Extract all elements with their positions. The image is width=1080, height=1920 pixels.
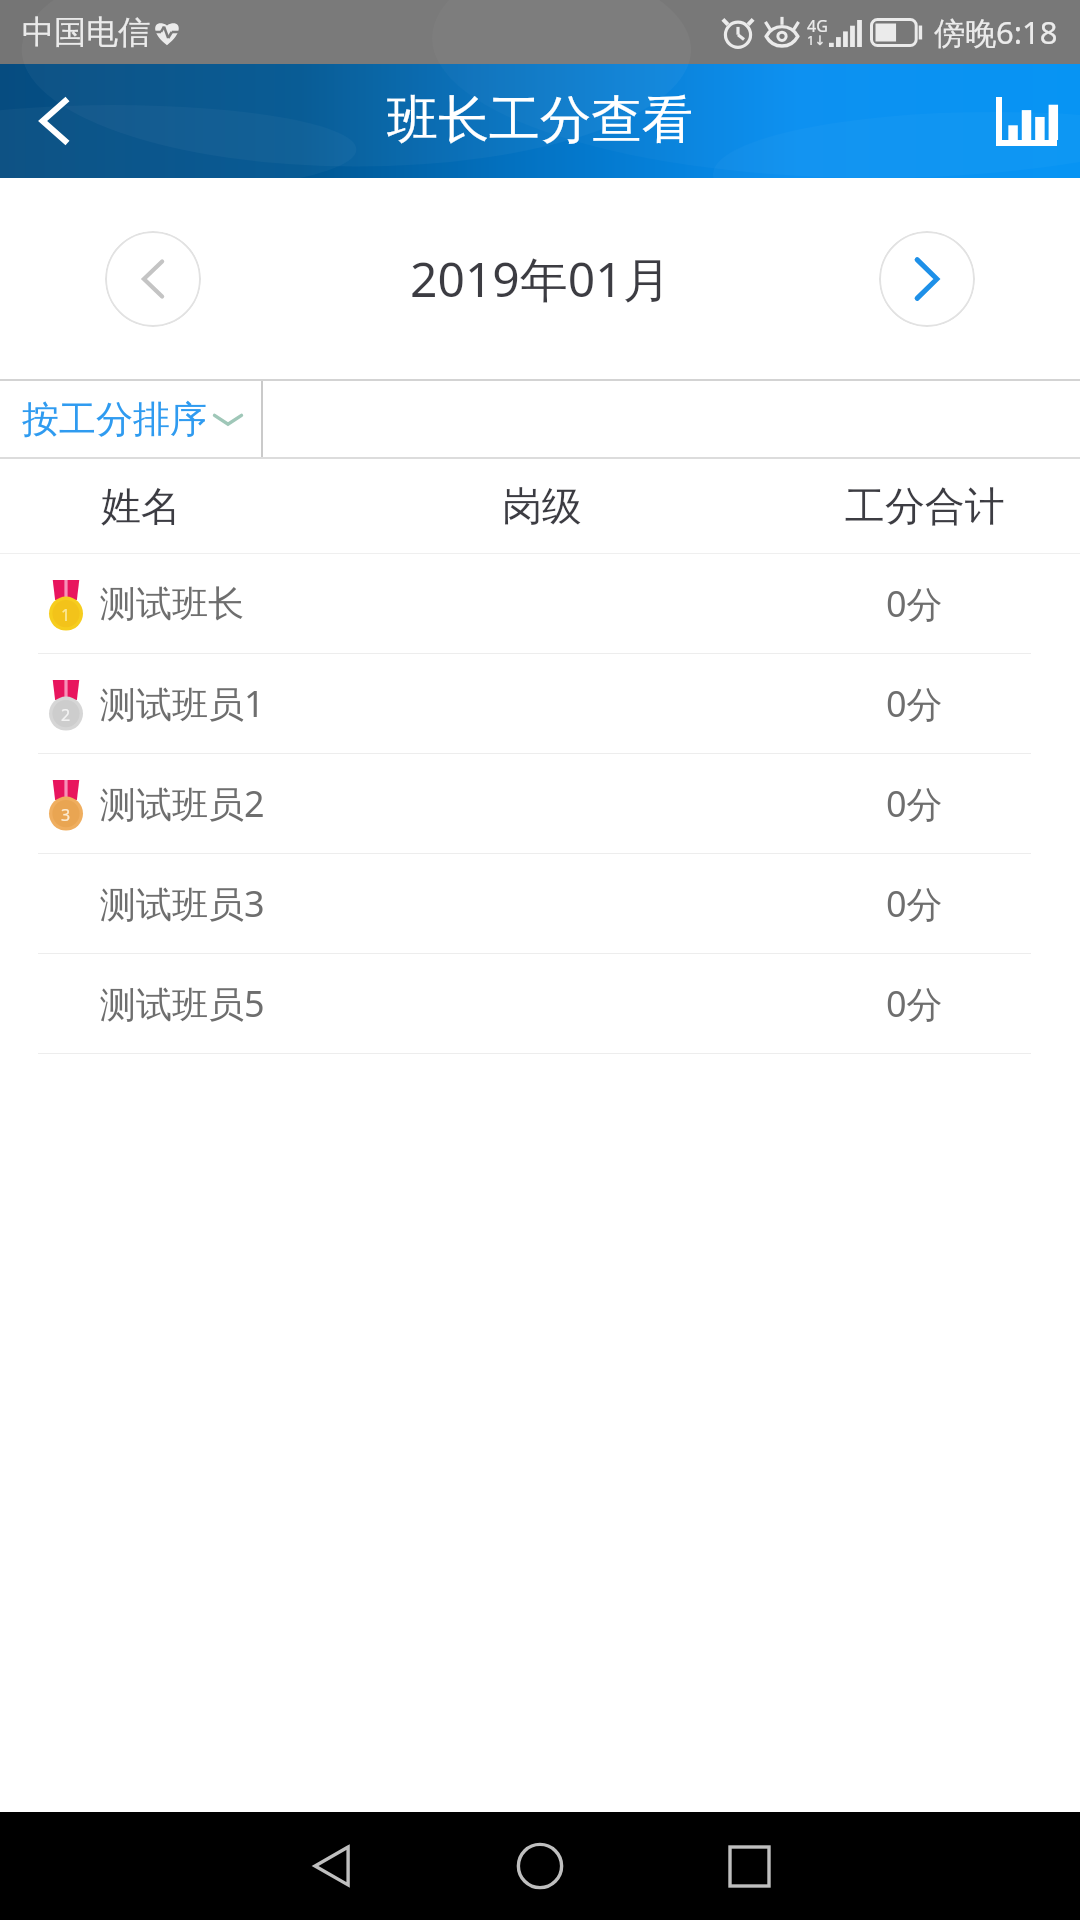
staticText: 0分 (886, 779, 943, 828)
button[interactable]: 2 (0, 654, 1080, 753)
staticText: 2 (61, 704, 71, 726)
staticText: 0分 (886, 979, 943, 1028)
staticText: 1 (61, 604, 71, 626)
button[interactable]: Home (492, 1818, 588, 1914)
staticText: 测试班长 (100, 581, 244, 626)
staticText: 1↓ (807, 31, 826, 49)
staticText: 0分 (886, 679, 943, 728)
staticText: 测试班员1 (100, 679, 265, 728)
staticText: 4G (807, 15, 828, 37)
staticText: 姓名 (101, 481, 181, 531)
button[interactable]: 按工分排序 (0, 381, 261, 457)
button[interactable]: Back (0, 67, 108, 175)
staticText: 中国电信 (22, 12, 150, 52)
button[interactable]: Statistics (972, 67, 1080, 175)
staticText: 按工分排序 (22, 396, 207, 443)
button[interactable]: 测试班员3 (0, 854, 1080, 953)
button[interactable]: Back (283, 1818, 379, 1914)
button[interactable]: 1 (0, 554, 1080, 653)
staticText: 0分 (886, 879, 943, 928)
staticText: 测试班员5 (100, 979, 265, 1028)
staticText: 2019年01月 (410, 246, 671, 312)
button[interactable]: 3 (0, 754, 1080, 853)
button[interactable]: 测试班员5 (0, 954, 1080, 1053)
staticText: 班长工分查看 (387, 88, 693, 152)
staticText: 工分合计 (845, 481, 1005, 531)
staticText: 0分 (886, 579, 943, 628)
button[interactable]: Previous month (105, 231, 201, 327)
staticText: 3 (61, 804, 71, 826)
staticText: 测试班员2 (100, 779, 265, 828)
staticText: 岗级 (502, 481, 582, 531)
staticText: 测试班员3 (100, 879, 265, 928)
staticText: 傍晚6:18 (934, 11, 1058, 53)
button[interactable]: Recents (701, 1818, 797, 1914)
button[interactable]: Next month (879, 231, 975, 327)
